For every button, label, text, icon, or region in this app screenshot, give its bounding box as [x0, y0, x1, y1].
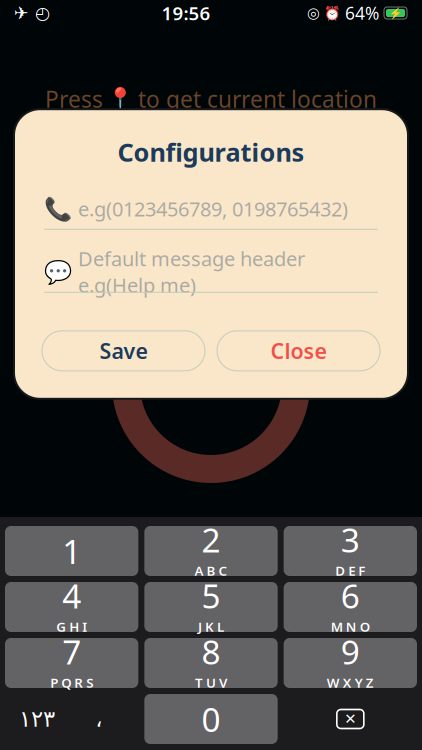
staticText: ١٢٣	[19, 706, 55, 732]
staticText: 4	[62, 573, 81, 618]
staticText: J K L	[198, 618, 224, 635]
button[interactable]: 4	[5, 582, 138, 632]
staticText: Close	[270, 337, 326, 365]
staticText: A B C	[194, 562, 227, 579]
staticText: 5	[201, 573, 220, 618]
staticText: D E F	[335, 562, 365, 579]
staticText: ◎	[307, 5, 320, 21]
staticText: 📞	[44, 196, 72, 222]
staticText: G H I	[56, 618, 87, 635]
staticText: ✕	[344, 711, 356, 727]
staticText: 19:56	[161, 1, 210, 25]
button[interactable]: Delete	[284, 694, 417, 744]
staticText: ◴	[35, 3, 50, 23]
staticText: ،	[95, 706, 102, 732]
staticText: P Q R S	[50, 674, 93, 691]
staticText: 3	[341, 517, 360, 562]
staticText: 2	[201, 517, 220, 562]
staticText: 6	[341, 573, 360, 618]
staticText: to get current location	[138, 84, 377, 114]
button[interactable]: 2	[144, 526, 278, 576]
staticText: 7	[62, 629, 81, 674]
button[interactable]: 3	[284, 526, 417, 576]
staticText: 9	[341, 629, 360, 674]
button[interactable]: 1	[5, 526, 138, 576]
button[interactable]: 0	[144, 694, 278, 744]
staticText: T U V	[195, 674, 227, 691]
button[interactable]: 6	[284, 582, 417, 632]
staticText: Press	[45, 84, 103, 114]
staticText: W X Y Z	[327, 674, 374, 691]
staticText: M N O	[331, 618, 370, 635]
button[interactable]: 5	[144, 582, 278, 632]
staticText: Default message header e.g(Help me)	[78, 245, 305, 298]
button[interactable]: Switch to Arabic numerals	[5, 694, 138, 744]
button[interactable]: Close	[217, 331, 380, 371]
staticText: ⚡	[389, 7, 402, 19]
staticText: 💬	[44, 259, 72, 285]
staticText: 64%	[345, 1, 379, 24]
staticText: ⏰	[324, 5, 341, 21]
staticText: 📍	[107, 87, 134, 111]
button[interactable]: Save	[42, 331, 205, 371]
button[interactable]: 9	[284, 638, 417, 688]
staticText: Save	[99, 337, 147, 365]
button[interactable]: 7	[5, 638, 138, 688]
staticText: ✈	[14, 3, 29, 23]
staticText: 1	[62, 529, 81, 573]
staticText: 8	[201, 629, 220, 674]
staticText: 0	[201, 697, 220, 741]
button[interactable]: 8	[144, 638, 278, 688]
staticText: e.g(0123456789, 0198765432)	[78, 195, 348, 222]
staticText: Configurations	[117, 135, 304, 169]
